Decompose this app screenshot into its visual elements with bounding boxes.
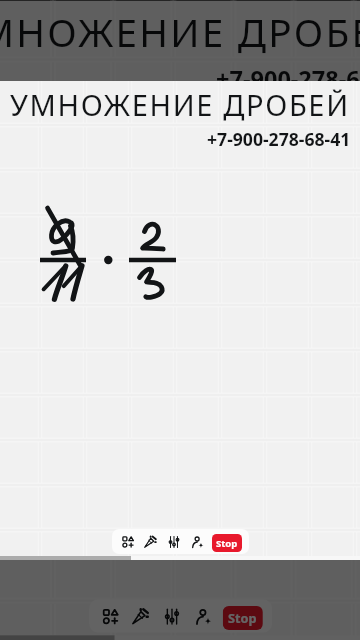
staticText: УМНОЖЕНИЕ ДРОБЕЙ [10, 85, 350, 124]
button[interactable]: Invite participant [189, 603, 216, 630]
staticText: Stop [216, 537, 238, 550]
button[interactable]: Settings [164, 532, 184, 552]
staticText: УМНОЖЕНИЕ ДРОБЕЙ [0, 6, 360, 58]
staticText: +7-900-278-68-41 [216, 62, 360, 94]
button[interactable]: Stop [212, 534, 242, 552]
button[interactable]: Invite participant [187, 532, 207, 552]
button[interactable]: Add shape [97, 603, 124, 630]
staticText: +7-900-278-68-41 [207, 127, 351, 151]
button[interactable]: Celebrate [140, 532, 160, 552]
button[interactable]: Settings [159, 603, 185, 630]
button[interactable]: Stop [223, 606, 263, 630]
staticText: Stop [228, 610, 257, 627]
button[interactable]: Celebrate [127, 603, 153, 630]
button[interactable]: Add shape [118, 532, 138, 552]
